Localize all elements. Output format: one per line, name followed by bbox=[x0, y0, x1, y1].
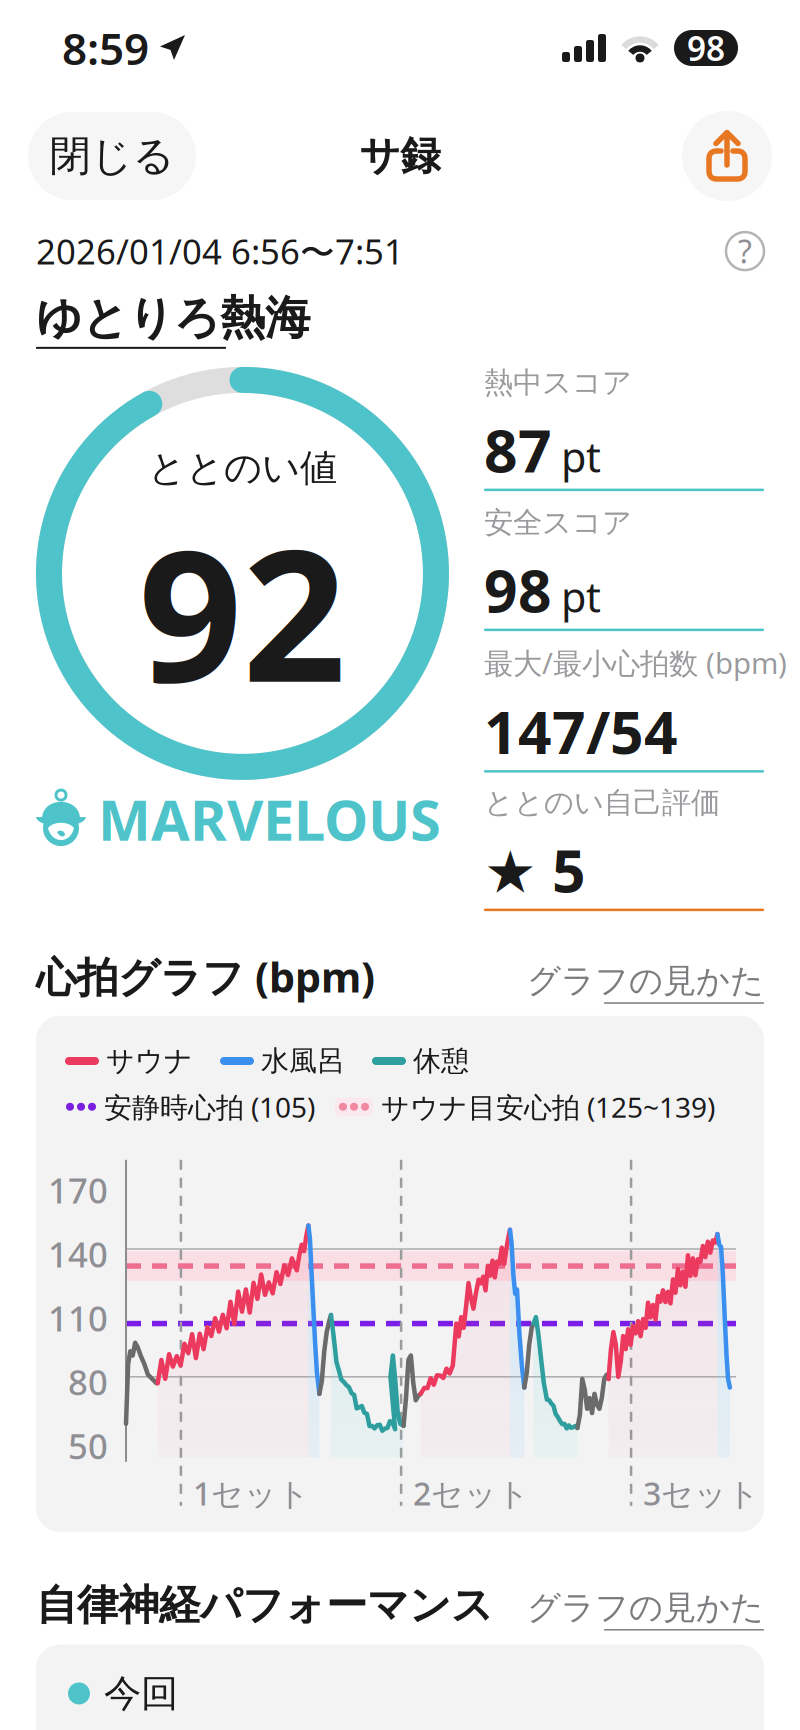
staticText: 水風呂 bbox=[261, 1044, 345, 1078]
staticText: 3セット bbox=[643, 1472, 760, 1514]
staticText: 8:59 bbox=[62, 19, 149, 77]
staticText: サウナ目安心拍 (125~139) bbox=[381, 1088, 715, 1125]
staticText: 98 bbox=[687, 26, 725, 70]
staticText: pt bbox=[561, 429, 601, 484]
staticText: 安全スコア bbox=[484, 505, 632, 541]
staticText: グラフの見かた bbox=[527, 1587, 764, 1628]
staticText: 140 bbox=[48, 1231, 108, 1277]
staticText: 2026/01/04 6:56〜7:51 bbox=[36, 228, 404, 274]
staticText: 80 bbox=[68, 1359, 108, 1405]
button[interactable]: 閉じる bbox=[28, 112, 196, 200]
staticText: 最大/最小心拍数 (bpm) bbox=[484, 643, 787, 682]
staticText: 2セット bbox=[413, 1472, 530, 1514]
staticText: 1セット bbox=[193, 1472, 310, 1514]
staticText: 今回 bbox=[104, 1671, 178, 1716]
staticText: サウナ bbox=[106, 1044, 193, 1078]
staticText: 閉じる bbox=[49, 131, 174, 181]
staticText: 安静時心拍 (105) bbox=[104, 1088, 315, 1125]
staticText: ととのい自己評価 bbox=[484, 785, 720, 821]
staticText: 170 bbox=[48, 1167, 108, 1213]
staticText: 自律神経パフォーマンス bbox=[36, 1580, 493, 1631]
staticText: 休憩 bbox=[413, 1044, 469, 1078]
staticText: 110 bbox=[48, 1295, 108, 1341]
staticText: 熱中スコア bbox=[484, 365, 632, 401]
button[interactable]: グラフの見かた bbox=[527, 960, 764, 1004]
staticText: ★ 5 bbox=[484, 831, 586, 909]
staticText: 92 bbox=[138, 491, 346, 732]
staticText: MARVELOUS bbox=[98, 782, 441, 856]
staticText: 心拍グラフ (bpm) bbox=[36, 949, 375, 1004]
staticText: 147/54 bbox=[484, 692, 678, 770]
staticText: ととのい値 bbox=[148, 445, 337, 491]
button[interactable]: Help bbox=[726, 232, 764, 270]
button[interactable]: グラフの見かた bbox=[527, 1587, 764, 1630]
staticText: 50 bbox=[68, 1423, 108, 1469]
staticText: グラフの見かた bbox=[527, 960, 764, 1001]
staticText: ? bbox=[738, 230, 752, 272]
staticText: サ録 bbox=[359, 131, 440, 180]
staticText: ゆとりろ熱海 bbox=[36, 290, 310, 346]
staticText: 98 bbox=[484, 551, 552, 629]
button[interactable]: Share bbox=[682, 111, 772, 201]
staticText: 87 bbox=[484, 411, 552, 489]
staticText: pt bbox=[561, 569, 601, 624]
